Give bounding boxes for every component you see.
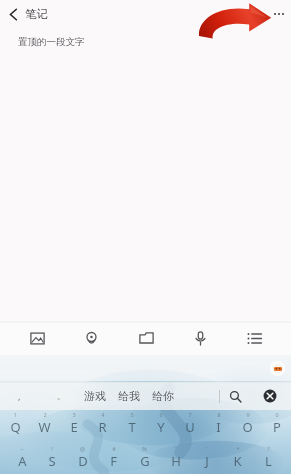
staticText: "	[174, 445, 177, 452]
staticText: 给你	[152, 389, 174, 403]
button[interactable]: Voice input	[183, 322, 217, 355]
staticText: @	[80, 445, 85, 452]
staticText: D	[78, 452, 88, 470]
button[interactable]: "	[160, 444, 191, 470]
staticText: W	[38, 418, 51, 436]
staticText: 3	[72, 411, 76, 418]
button[interactable]: 9	[233, 410, 262, 436]
button[interactable]: Emoji	[270, 361, 285, 376]
staticText: A	[18, 452, 27, 470]
button[interactable]: 7	[175, 410, 204, 436]
button[interactable]: ?	[253, 444, 284, 470]
staticText: '	[206, 445, 208, 452]
staticText: U	[185, 418, 195, 436]
button[interactable]: %	[129, 444, 160, 470]
button[interactable]: ,	[14, 386, 25, 406]
staticText: K	[233, 452, 242, 470]
staticText: 5	[130, 411, 134, 418]
staticText: %	[142, 445, 147, 452]
button[interactable]: #	[98, 444, 129, 470]
button[interactable]: 。	[53, 387, 69, 405]
staticText: 给我	[118, 389, 140, 403]
button[interactable]: @	[67, 444, 98, 470]
staticText: Y	[157, 418, 165, 436]
staticText: 置顶的一段文字	[18, 36, 85, 48]
button[interactable]: *	[222, 444, 253, 470]
staticText: 7	[188, 411, 192, 418]
staticText: J	[205, 452, 209, 470]
staticText: P	[273, 418, 281, 436]
staticText: 6	[159, 411, 163, 418]
staticText: 2	[43, 411, 47, 418]
staticText: H	[171, 452, 181, 470]
other: Back	[9, 8, 18, 21]
staticText: #	[112, 445, 116, 452]
button[interactable]: 置顶的一段文字	[0, 27, 291, 322]
staticText: O	[242, 418, 253, 436]
button[interactable]: Back	[0, 3, 56, 25]
button[interactable]: '	[191, 444, 222, 470]
staticText: ~	[20, 445, 24, 452]
button[interactable]: 1	[0, 410, 30, 436]
staticText: Q	[10, 418, 21, 436]
staticText: 0	[275, 411, 279, 418]
button[interactable]: Insert image	[20, 322, 54, 355]
staticText: T	[128, 418, 136, 436]
staticText: *	[236, 445, 240, 452]
staticText: 。	[57, 391, 65, 401]
button[interactable]: Insert location	[74, 322, 108, 355]
staticText: 笔记	[25, 7, 48, 21]
staticText: !	[51, 445, 53, 452]
button[interactable]: Search	[226, 387, 245, 406]
button[interactable]: ~	[7, 444, 37, 470]
button[interactable]: Attach file	[129, 322, 163, 355]
button[interactable]: 2	[30, 410, 59, 436]
button[interactable]: 6	[146, 410, 175, 436]
button[interactable]: 5	[117, 410, 146, 436]
staticText: ,	[18, 390, 21, 402]
button[interactable]: More options	[267, 7, 291, 21]
button[interactable]: 给你	[146, 385, 180, 407]
staticText: R	[98, 418, 107, 436]
button[interactable]: Close suggestions	[261, 387, 279, 405]
staticText: 9	[246, 411, 250, 418]
staticText: G	[140, 452, 150, 470]
staticText: 游戏	[84, 389, 106, 403]
staticText: 4	[101, 411, 105, 418]
button[interactable]: !	[37, 444, 67, 470]
button[interactable]: 0	[262, 410, 291, 436]
button[interactable]: Bulleted list	[237, 322, 271, 355]
staticText: F	[110, 452, 117, 470]
staticText: 1	[13, 411, 17, 418]
button[interactable]: 4	[88, 410, 117, 436]
staticText: L	[265, 452, 272, 470]
staticText: 8	[217, 411, 221, 418]
button[interactable]: 8	[204, 410, 233, 436]
staticText: I	[216, 418, 221, 436]
staticText: E	[70, 418, 78, 436]
staticText: S	[48, 452, 56, 470]
button[interactable]: 给我	[112, 385, 146, 407]
staticText: ?	[267, 445, 270, 452]
button[interactable]: 3	[59, 410, 88, 436]
button[interactable]: 游戏	[78, 385, 112, 407]
